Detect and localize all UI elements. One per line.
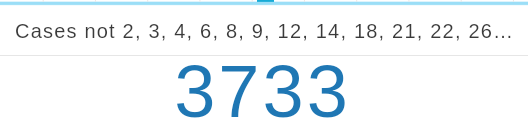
staticText: 3733: [174, 50, 351, 125]
staticText: Cases not 2, 3, 4, 6, 8, 9, 12, 14, 18, …: [15, 20, 515, 42]
